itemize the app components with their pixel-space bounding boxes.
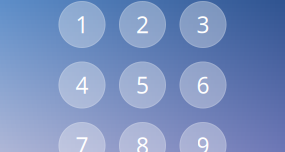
staticText: 1 xyxy=(75,9,88,39)
button[interactable]: 6 xyxy=(179,61,226,108)
button[interactable]: 3 xyxy=(179,1,226,48)
button[interactable]: 9 xyxy=(179,122,226,152)
staticText: 5 xyxy=(136,70,149,100)
button[interactable]: 2 xyxy=(119,1,166,48)
staticText: 6 xyxy=(196,70,209,100)
button[interactable]: 1 xyxy=(58,1,105,48)
staticText: 3 xyxy=(196,9,209,39)
button[interactable]: 7 xyxy=(58,122,105,152)
button[interactable]: 4 xyxy=(58,61,105,108)
staticText: 2 xyxy=(136,9,149,39)
staticText: 8 xyxy=(136,130,149,152)
button[interactable]: 5 xyxy=(119,61,166,108)
staticText: 7 xyxy=(75,130,88,152)
staticText: 4 xyxy=(75,70,88,100)
staticText: 9 xyxy=(196,130,209,152)
button[interactable]: 8 xyxy=(119,122,166,152)
